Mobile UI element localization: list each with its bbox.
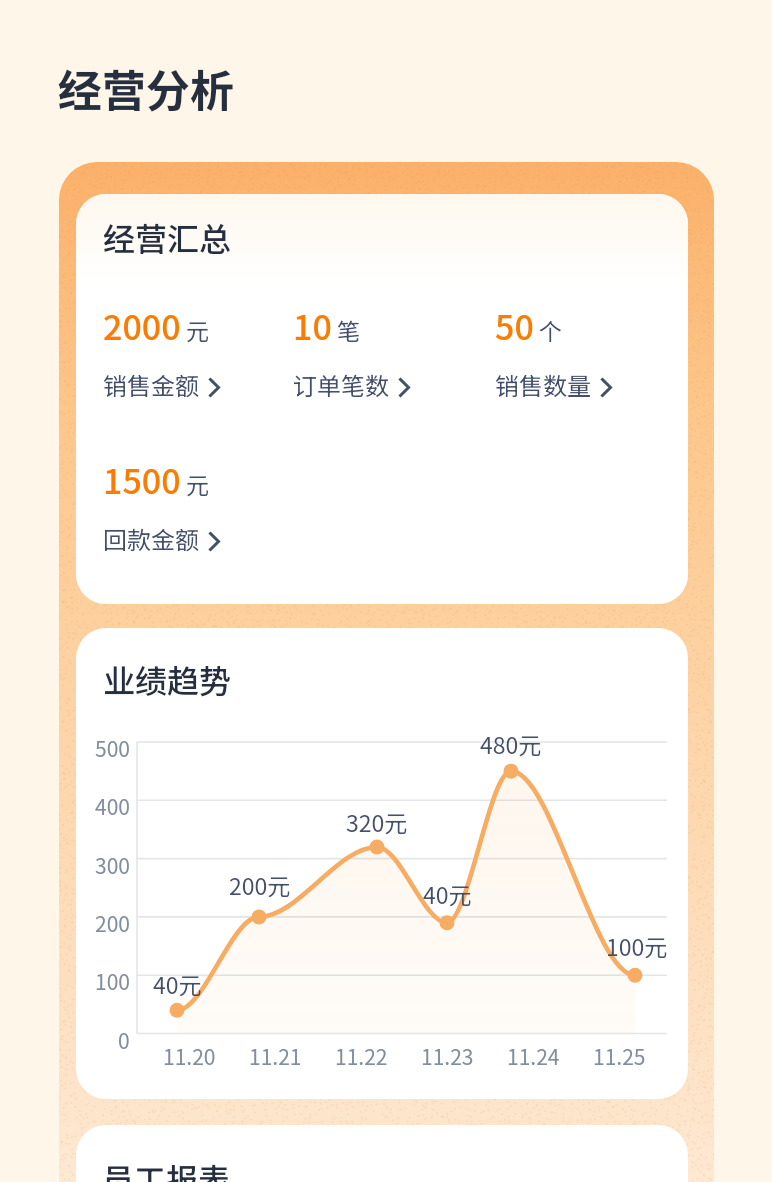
staticText: 0 xyxy=(118,1025,130,1055)
staticText: 11.20 xyxy=(163,1041,216,1071)
staticText: 200元 xyxy=(229,868,291,901)
staticText: 笔 xyxy=(337,313,360,346)
staticText: 320元 xyxy=(346,805,408,838)
staticText: 11.24 xyxy=(507,1041,560,1071)
staticText: 100元 xyxy=(606,929,668,962)
staticText: 11.25 xyxy=(593,1041,646,1071)
staticText: 经营分析 xyxy=(58,56,234,120)
staticText: 订单笔数 xyxy=(293,367,389,402)
staticText: 40元 xyxy=(153,967,202,1000)
staticText: 40元 xyxy=(423,877,472,910)
staticText: 100 xyxy=(95,966,130,996)
staticText: 50 xyxy=(495,301,534,350)
staticText: 200 xyxy=(95,908,130,938)
staticText: 480元 xyxy=(480,727,542,760)
staticText: 500 xyxy=(95,733,130,763)
staticText: 业绩趋势 xyxy=(103,656,232,702)
button[interactable]: 1500 xyxy=(103,455,293,556)
staticText: 员工报表 xyxy=(102,1155,231,1182)
staticText: 回款金额 xyxy=(103,521,199,556)
staticText: 1500 xyxy=(103,455,181,504)
staticText: 销售数量 xyxy=(495,367,591,402)
button[interactable]: 10 xyxy=(293,301,495,402)
staticText: 11.22 xyxy=(335,1041,388,1071)
staticText: 经营汇总 xyxy=(103,214,232,260)
staticText: 个 xyxy=(539,313,562,346)
staticText: 元 xyxy=(186,313,209,346)
staticText: 元 xyxy=(186,467,209,500)
button[interactable]: 2000 xyxy=(103,301,293,402)
button[interactable]: 50 xyxy=(495,301,675,402)
staticText: 11.23 xyxy=(421,1041,474,1071)
staticText: 2000 xyxy=(103,301,181,350)
staticText: 400 xyxy=(95,791,130,821)
staticText: 10 xyxy=(293,301,332,350)
staticText: 300 xyxy=(95,850,130,880)
staticText: 11.21 xyxy=(249,1041,302,1071)
staticText: 销售金额 xyxy=(103,367,199,402)
